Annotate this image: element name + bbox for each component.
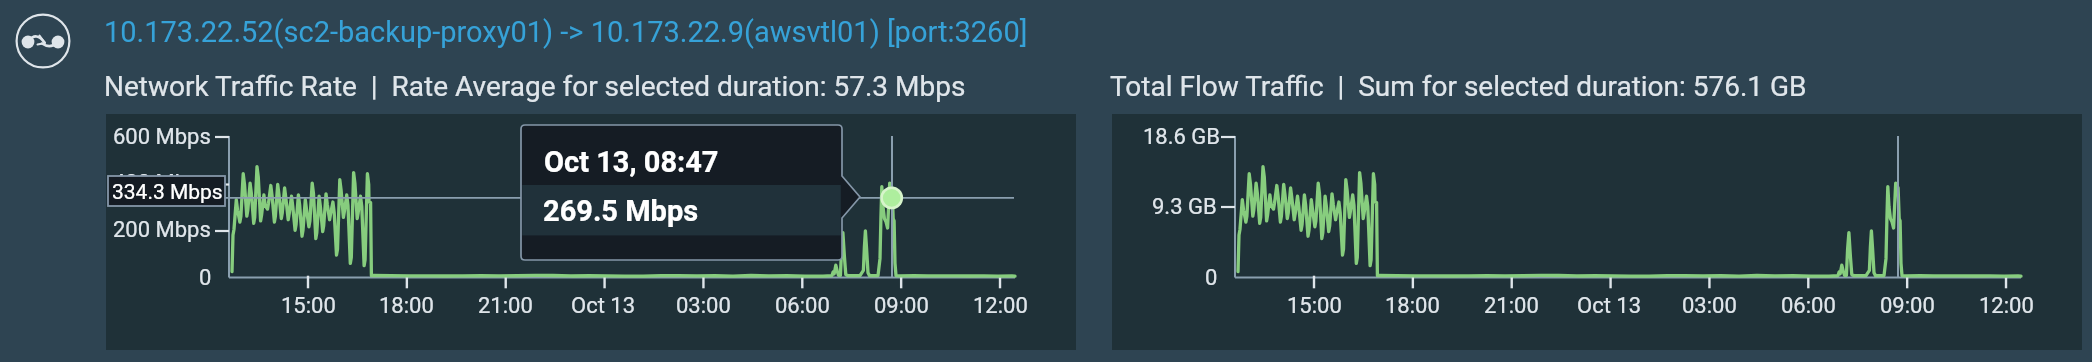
staticText: Oct 13, 08:47 <box>544 145 719 179</box>
staticText: Oct 13 <box>1577 293 1642 319</box>
staticText: 600 Mbps <box>113 124 211 150</box>
staticText: 06:00 <box>775 293 830 319</box>
staticText: 200 Mbps <box>113 217 211 243</box>
staticText: 0 <box>1205 265 1218 291</box>
button[interactable]: 10.173.22.52(sc2-backup-proxy01) -> 10.1… <box>104 15 1028 49</box>
staticText: 269.5 Mbps <box>543 194 699 228</box>
staticText: 334.3 Mbps <box>112 180 223 205</box>
staticText: 12:00 <box>973 293 1028 319</box>
staticText: 09:00 <box>874 293 929 319</box>
staticText: 0 <box>199 265 212 291</box>
button[interactable]: Connection flow <box>15 13 71 69</box>
staticText: 03:00 <box>1682 293 1737 319</box>
staticText: 18.6 GB <box>1143 124 1221 150</box>
staticText: 18:00 <box>1385 293 1440 319</box>
staticText: 21:00 <box>1484 293 1539 319</box>
staticText: 09:00 <box>1880 293 1935 319</box>
staticText: 9.3 GB <box>1152 194 1217 220</box>
staticText: Total Flow Traffic | Sum for selected du… <box>1110 70 1807 103</box>
staticText: 12:00 <box>1979 293 2034 319</box>
staticText: Oct 13 <box>571 293 636 319</box>
staticText: Network Traffic Rate | Rate Average for … <box>104 70 966 103</box>
staticText: 03:00 <box>676 293 731 319</box>
staticText: 18:00 <box>379 293 434 319</box>
staticText: 06:00 <box>1781 293 1836 319</box>
staticText: 400 Mbps <box>113 170 211 196</box>
staticText: 15:00 <box>1287 293 1342 319</box>
staticText: 21:00 <box>478 293 533 319</box>
staticText: 15:00 <box>281 293 336 319</box>
